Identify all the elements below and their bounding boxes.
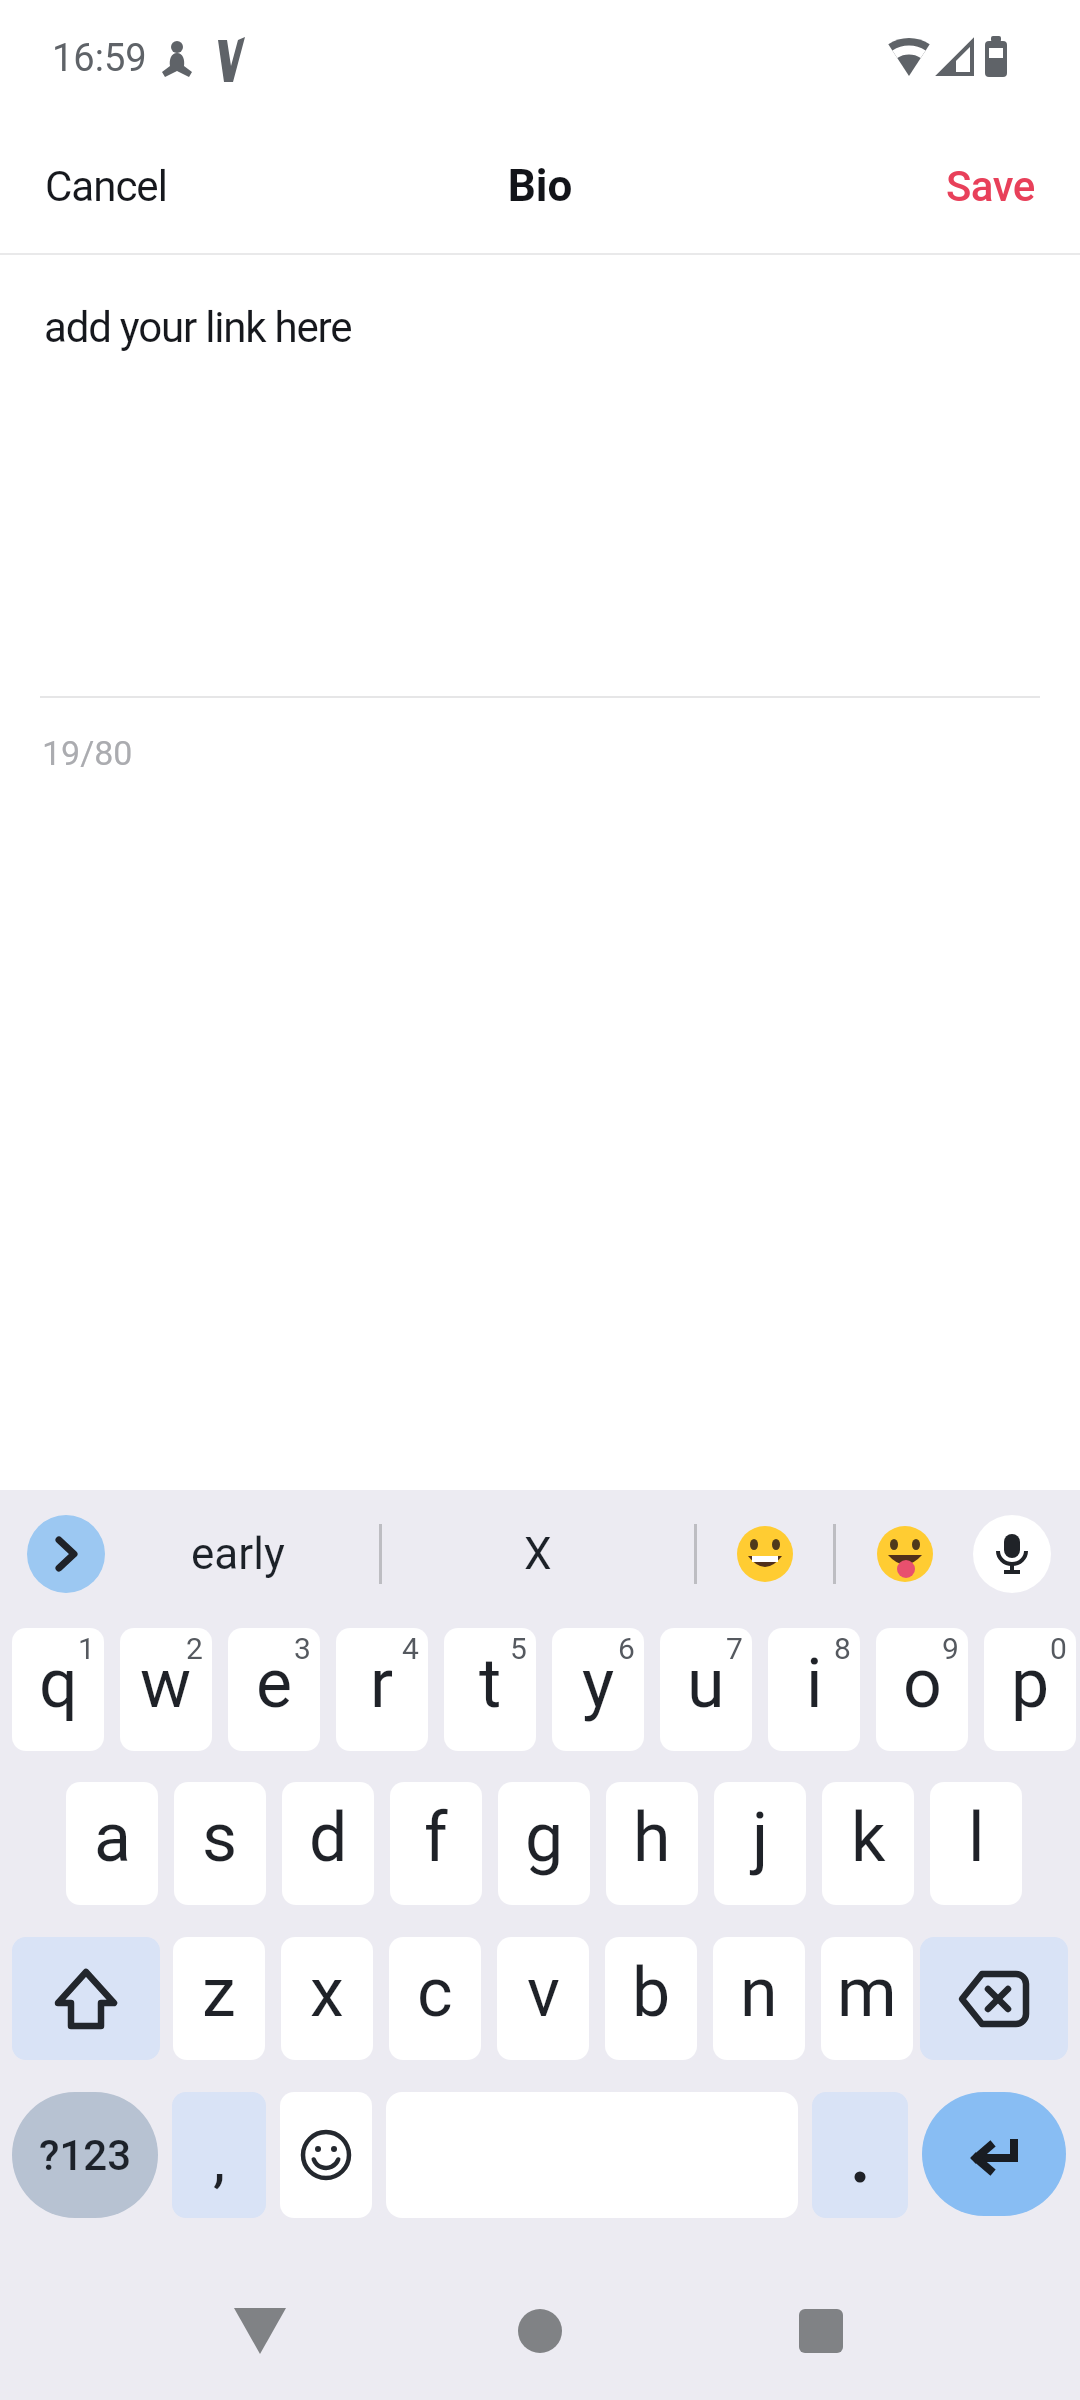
button[interactable]: u <box>660 1628 752 1751</box>
staticText: o <box>903 1644 942 1724</box>
button[interactable] <box>922 2092 1066 2216</box>
staticText: s <box>202 1798 238 1878</box>
staticText: b <box>632 1953 671 2033</box>
staticText: h <box>633 1798 671 1878</box>
staticText: 16:59 <box>52 36 147 81</box>
button[interactable]: z <box>173 1937 265 2060</box>
staticText: v <box>527 1953 560 2033</box>
button[interactable]: h <box>606 1782 698 1905</box>
staticText: t <box>479 1644 502 1724</box>
staticText: early <box>191 1528 285 1580</box>
button[interactable]: w <box>120 1628 212 1751</box>
staticText: r <box>370 1644 394 1724</box>
staticText: z <box>202 1953 236 2033</box>
button[interactable]: l <box>930 1782 1022 1905</box>
staticText: i <box>806 1644 823 1724</box>
staticText: q <box>39 1644 78 1724</box>
button[interactable]: ?123 <box>12 2092 158 2218</box>
staticText: 0 <box>1050 1631 1067 1666</box>
staticText: x <box>310 1953 344 2033</box>
button[interactable]: p <box>984 1628 1076 1751</box>
button[interactable] <box>799 2309 843 2353</box>
button[interactable]: early <box>130 1516 345 1592</box>
staticText: add your link here <box>44 303 352 352</box>
button[interactable]: m <box>821 1937 913 2060</box>
staticText: Save <box>946 162 1035 211</box>
button[interactable]: k <box>822 1782 914 1905</box>
staticText: d <box>309 1798 348 1878</box>
staticText: , <box>213 2123 226 2196</box>
button[interactable] <box>737 1526 793 1582</box>
button[interactable]: v <box>497 1937 589 2060</box>
staticText: 7 <box>726 1631 743 1666</box>
button[interactable] <box>518 2309 562 2353</box>
button[interactable]: t <box>444 1628 536 1751</box>
button[interactable]: b <box>605 1937 697 2060</box>
button[interactable]: r <box>336 1628 428 1751</box>
staticText: 3 <box>294 1631 311 1666</box>
staticText: 6 <box>618 1631 635 1666</box>
staticText: 8 <box>834 1631 851 1666</box>
staticText: n <box>740 1953 778 2033</box>
staticText: 4 <box>402 1631 419 1666</box>
button[interactable] <box>27 1515 105 1593</box>
staticText: X <box>524 1528 552 1580</box>
button[interactable]: y <box>552 1628 644 1751</box>
staticText: g <box>525 1798 564 1878</box>
button[interactable]: q <box>12 1628 104 1751</box>
button[interactable]: e <box>228 1628 320 1751</box>
button[interactable]: c <box>389 1937 481 2060</box>
staticText: f <box>424 1798 448 1878</box>
button[interactable]: Cancel <box>45 162 167 211</box>
staticText: ?123 <box>39 2131 132 2180</box>
staticText: 19/80 <box>42 733 133 773</box>
staticText: w <box>140 1644 192 1724</box>
button[interactable]: i <box>768 1628 860 1751</box>
button[interactable]: x <box>281 1937 373 2060</box>
staticText: Bio <box>0 160 1080 212</box>
button[interactable]: s <box>174 1782 266 1905</box>
staticText: p <box>1011 1644 1050 1724</box>
staticText: e <box>256 1644 293 1724</box>
button[interactable]: , <box>172 2092 266 2218</box>
button[interactable] <box>973 1515 1051 1593</box>
button[interactable] <box>12 1937 160 2060</box>
staticText: c <box>417 1953 453 2033</box>
staticText: a <box>94 1798 131 1878</box>
staticText: Cancel <box>45 162 167 211</box>
button[interactable] <box>280 2092 372 2218</box>
button[interactable] <box>877 1526 933 1582</box>
button[interactable] <box>812 2092 908 2218</box>
staticText: y <box>582 1644 615 1724</box>
button[interactable]: d <box>282 1782 374 1905</box>
button[interactable]: Save <box>946 162 1035 211</box>
staticText: l <box>968 1798 985 1878</box>
button[interactable] <box>920 1937 1068 2060</box>
staticText: 9 <box>942 1631 959 1666</box>
button[interactable] <box>234 2308 286 2354</box>
staticText: j <box>752 1798 769 1878</box>
staticText: k <box>851 1798 886 1878</box>
button[interactable]: a <box>66 1782 158 1905</box>
button[interactable]: f <box>390 1782 482 1905</box>
button[interactable]: X <box>455 1516 620 1592</box>
staticText: m <box>837 1953 897 2033</box>
button[interactable]: n <box>713 1937 805 2060</box>
staticText: 5 <box>510 1631 527 1666</box>
button[interactable]: o <box>876 1628 968 1751</box>
button[interactable]: j <box>714 1782 806 1905</box>
button[interactable]: g <box>498 1782 590 1905</box>
staticText: 1 <box>78 1631 95 1666</box>
staticText: u <box>687 1644 725 1724</box>
staticText: 2 <box>186 1631 203 1666</box>
